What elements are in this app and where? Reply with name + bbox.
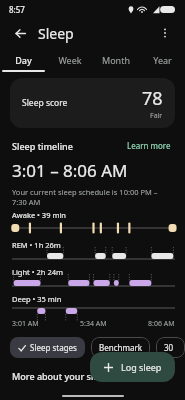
button[interactable]: Week	[47, 48, 93, 72]
staticText: Awake • 39 min	[12, 210, 66, 220]
staticText: Learn more	[127, 140, 171, 151]
staticText: REM • 1h 26m	[12, 240, 61, 250]
staticText: Deep • 35 min	[12, 294, 62, 304]
staticText: Year	[153, 54, 172, 66]
staticText: Log sleep	[121, 361, 162, 373]
button[interactable]: 30 day ave	[156, 337, 185, 358]
button[interactable]: Day	[0, 48, 47, 72]
button[interactable]: Log sleep	[90, 352, 175, 382]
staticText: Sleep stages	[30, 342, 77, 353]
button[interactable]: Year	[139, 48, 185, 72]
staticText: Sleep	[38, 24, 74, 43]
staticText: Month	[102, 54, 130, 66]
staticText: Benchmark	[99, 342, 142, 353]
staticText: Light • 2h 24m	[12, 267, 64, 277]
staticText: 5:34 AM	[80, 319, 107, 329]
button[interactable]: Benchmark	[91, 337, 150, 358]
staticText: Week	[58, 54, 82, 66]
staticText: 3:01 AM	[12, 319, 39, 329]
button[interactable]: Sleep stages	[10, 337, 85, 358]
button[interactable]: More options	[155, 23, 175, 43]
staticText: 78	[142, 86, 163, 111]
staticText: 8:57	[9, 4, 25, 15]
staticText: 30 day ave	[164, 342, 177, 353]
button[interactable]: Learn more	[125, 138, 173, 153]
button[interactable]: Month	[93, 48, 139, 72]
staticText: Fair	[150, 111, 163, 121]
staticText: Sleep score	[22, 97, 68, 109]
staticText: 8:06 AM	[148, 319, 175, 329]
staticText: Your current sleep schedule is 10:00 PM …	[12, 187, 158, 207]
staticText: More about your sleep	[12, 370, 110, 382]
staticText: Sleep timeline	[12, 140, 73, 152]
button[interactable]: Back	[10, 23, 30, 43]
staticText: Day	[15, 54, 32, 66]
button[interactable]: Sleep score	[10, 78, 175, 128]
staticText: 3:01 – 8:06 AM	[12, 159, 128, 182]
